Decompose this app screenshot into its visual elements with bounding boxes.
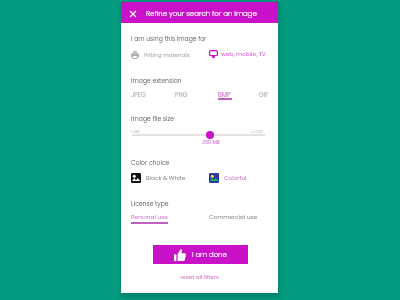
- button[interactable]: Commercial use: [209, 213, 258, 221]
- staticText: Priting materials: [144, 51, 190, 59]
- staticText: Colorful: [224, 174, 247, 182]
- button[interactable]: JPEG: [131, 91, 147, 100]
- button[interactable]: web, mobile, TV: [209, 50, 266, 58]
- staticText: JPEG: [131, 91, 146, 100]
- staticText: web, mobile, TV: [221, 50, 266, 58]
- button[interactable]: I am done: [153, 245, 248, 264]
- staticText: BMP: [218, 91, 231, 100]
- staticText: 260 MB: [202, 139, 220, 146]
- staticText: Color choice: [131, 159, 170, 168]
- button[interactable]: reset all filters: [180, 273, 219, 281]
- staticText: License type: [131, 200, 169, 209]
- button[interactable]: Priting materials: [131, 51, 190, 59]
- button[interactable]: Close: [126, 7, 139, 20]
- button[interactable]: PNG: [175, 91, 189, 100]
- button[interactable]: GIF: [259, 91, 270, 100]
- button[interactable]: Image file size slider: [206, 131, 214, 139]
- staticText: PNG: [175, 91, 188, 100]
- staticText: 1 MB: [131, 129, 140, 135]
- staticText: Image file size: [131, 115, 175, 124]
- staticText: Personal use: [131, 213, 168, 221]
- staticText: Image extension: [131, 77, 182, 86]
- staticText: GIF: [259, 91, 269, 100]
- button[interactable]: Personal use: [131, 213, 168, 223]
- staticText: I am using this image for: [131, 35, 207, 44]
- button[interactable]: BMP: [218, 91, 232, 102]
- staticText: +5 MB: [250, 129, 263, 135]
- staticText: Black & White: [146, 174, 186, 182]
- staticText: I am done: [192, 250, 227, 260]
- staticText: Refine your search for an image: [146, 9, 257, 19]
- button[interactable]: Colorful: [209, 173, 247, 183]
- button[interactable]: Black & White: [131, 173, 186, 183]
